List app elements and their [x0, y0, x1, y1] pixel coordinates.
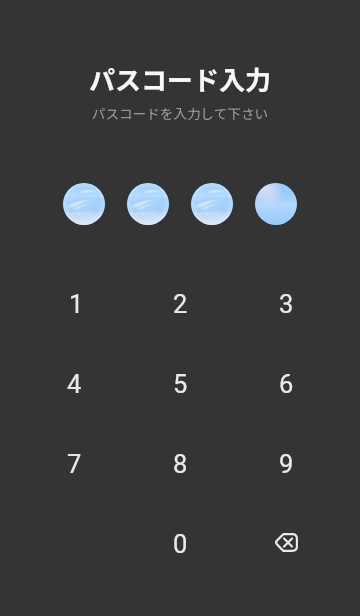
staticText: パスコード入力: [0, 60, 360, 98]
staticText: 5: [173, 369, 188, 399]
staticText: 7: [67, 449, 82, 479]
button[interactable]: 2: [127, 260, 233, 340]
other: Backspace: [274, 533, 298, 552]
staticText: 2: [173, 289, 188, 319]
button[interactable]: 4: [21, 340, 127, 420]
staticText: パスコードを入力して下さい: [0, 103, 360, 123]
button[interactable]: 6: [233, 340, 339, 420]
button[interactable]: 0: [127, 500, 233, 580]
staticText: 0: [173, 529, 188, 559]
button[interactable]: 9: [233, 420, 339, 500]
button[interactable]: Backspace: [233, 500, 339, 580]
button[interactable]: 5: [127, 340, 233, 420]
staticText: 9: [279, 449, 294, 479]
staticText: 6: [279, 369, 294, 399]
staticText: 3: [279, 289, 294, 319]
button[interactable]: 3: [233, 260, 339, 340]
button[interactable]: 7: [21, 420, 127, 500]
staticText: 4: [67, 369, 82, 399]
staticText: 1: [69, 289, 84, 319]
button[interactable]: 1: [21, 260, 127, 340]
button[interactable]: 8: [127, 420, 233, 500]
staticText: 8: [173, 449, 188, 479]
